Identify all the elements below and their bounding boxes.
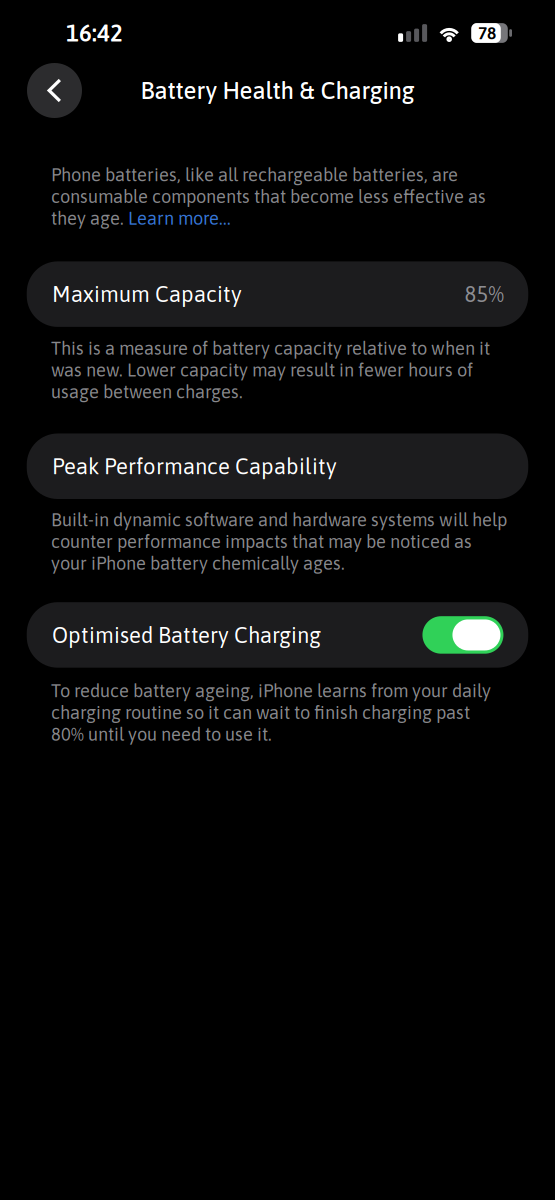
staticText: they age.: [51, 208, 128, 229]
staticText: was new. Lower capacity may result in fe…: [51, 359, 473, 380]
staticText: your iPhone battery chemically ages.: [51, 553, 345, 574]
staticText: consumable components that become less e…: [51, 186, 486, 207]
button[interactable]: Optimised Battery Charging: [27, 602, 528, 668]
staticText: Peak Performance Capability: [52, 454, 337, 479]
staticText: Learn more...: [128, 208, 231, 229]
staticText: 78: [478, 23, 496, 43]
button[interactable]: Maximum Capacity: [27, 261, 528, 327]
button[interactable]: Optimised Battery Charging: [422, 616, 503, 654]
button[interactable]: Peak Performance Capability: [27, 433, 528, 499]
staticText: counter performance impacts that may be …: [51, 531, 472, 552]
staticText: Phone batteries, like all rechargeable b…: [51, 164, 458, 185]
staticText: Battery Health & Charging: [140, 77, 414, 104]
button[interactable]: Back: [27, 63, 82, 118]
staticText: usage between charges.: [51, 381, 243, 402]
staticText: Built-in dynamic software and hardware s…: [51, 509, 507, 530]
staticText: 85%: [464, 281, 503, 307]
staticText: charging routine so it can wait to finis…: [51, 702, 470, 723]
staticText: Optimised Battery Charging: [52, 622, 321, 647]
staticText: This is a measure of battery capacity re…: [51, 338, 490, 359]
button[interactable]: Learn more...: [128, 208, 231, 229]
staticText: 16:42: [66, 19, 123, 47]
staticText: To reduce battery ageing, iPhone learns …: [51, 680, 491, 701]
staticText: 80% until you need to use it.: [51, 724, 272, 745]
staticText: Maximum Capacity: [52, 281, 242, 307]
